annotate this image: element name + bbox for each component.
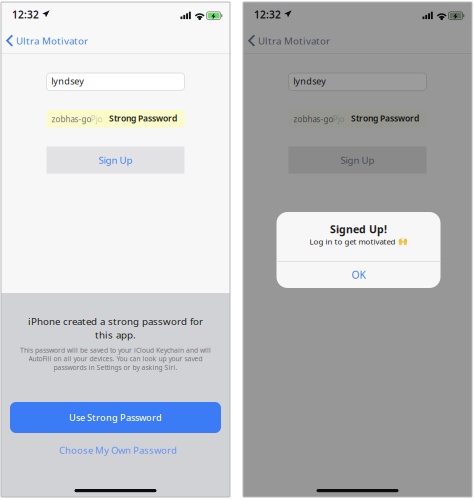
staticText: Choose My Own Password bbox=[59, 444, 177, 456]
staticText: 12:32 bbox=[254, 8, 281, 21]
staticText: lyndsey bbox=[293, 75, 326, 87]
staticText: Use Strong Password bbox=[69, 411, 162, 424]
staticText: Pjo bbox=[91, 114, 103, 124]
button[interactable]: Sign Up bbox=[288, 146, 426, 174]
staticText: passwords in Settings or by asking Siri. bbox=[53, 363, 177, 372]
button[interactable]: Ultra Motivator bbox=[243, 27, 338, 54]
staticText: Signed Up! bbox=[330, 222, 387, 236]
staticText: Log in to get motivated 🙌 bbox=[309, 236, 407, 247]
staticText: AutoFill on all your devices. You can lo… bbox=[28, 354, 202, 363]
button[interactable]: OK bbox=[276, 262, 440, 288]
staticText: OK bbox=[351, 268, 365, 282]
staticText: zobhas-go bbox=[51, 114, 91, 124]
button[interactable]: Sign Up bbox=[46, 146, 184, 174]
staticText: Strong Password bbox=[109, 112, 177, 124]
staticText: Sign Up bbox=[98, 154, 132, 167]
button[interactable]: Choose My Own Password bbox=[12, 441, 223, 459]
staticText: This password will be saved to your iClo… bbox=[20, 345, 211, 355]
staticText: this app. bbox=[95, 328, 136, 341]
staticText: 12:32 bbox=[12, 8, 39, 21]
staticText: iPhone created a strong password for bbox=[28, 314, 203, 328]
staticText: Pjo bbox=[333, 114, 345, 124]
staticText: Sign Up bbox=[340, 154, 374, 167]
button[interactable]: Use Strong Password bbox=[10, 402, 221, 433]
staticText: lyndsey bbox=[51, 75, 84, 87]
staticText: Ultra Motivator bbox=[258, 34, 330, 47]
staticText: Ultra Motivator bbox=[16, 34, 88, 47]
button[interactable]: Ultra Motivator bbox=[1, 27, 96, 54]
staticText: Strong Password bbox=[351, 112, 419, 124]
staticText: zobhas-go bbox=[293, 114, 333, 124]
